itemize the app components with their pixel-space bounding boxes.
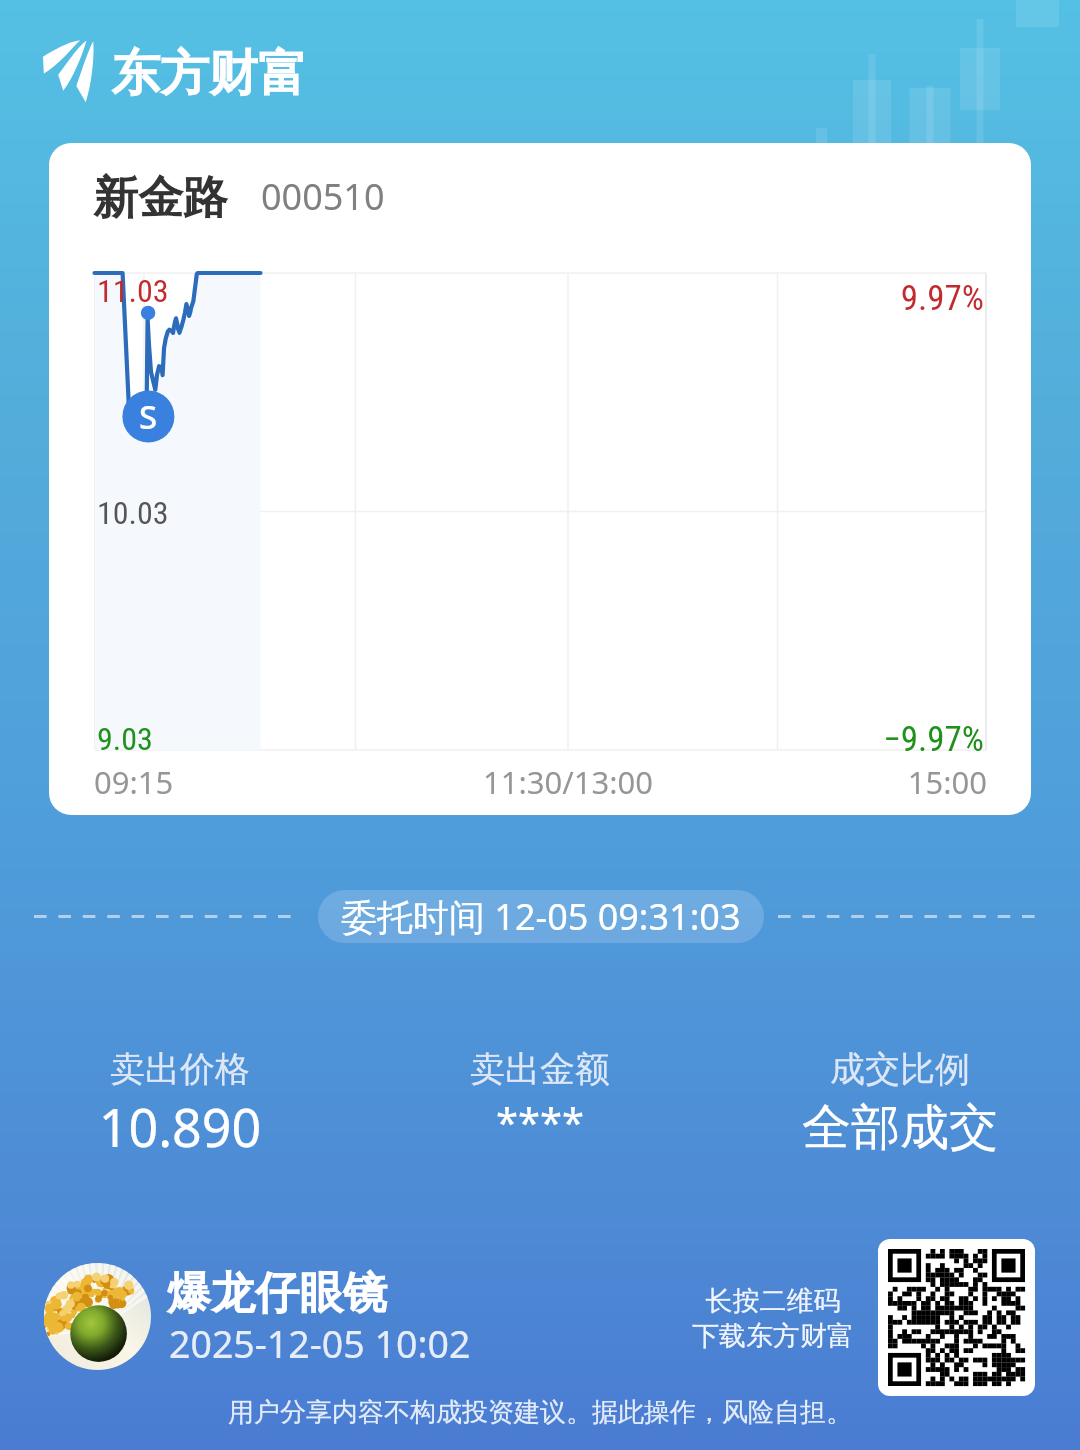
staticText: 2025-12-05 10:02: [169, 1318, 471, 1369]
staticText: 新金路: [93, 170, 228, 227]
button[interactable]: 卖出价格: [0, 1047, 360, 1163]
staticText: 10.890: [0, 1091, 360, 1162]
staticText: 东方财富: [111, 43, 307, 105]
button[interactable]: 委托时间 12-05 09:31:03: [318, 890, 764, 943]
staticText: 卖出金额: [360, 1047, 720, 1091]
staticText: 长按二维码: [683, 1284, 863, 1318]
staticText: 11.03: [97, 272, 169, 310]
button[interactable]: 长按二维码: [683, 1284, 863, 1364]
staticText: 11:30/13:00: [468, 761, 668, 803]
staticText: 下载东方财富: [683, 1319, 863, 1353]
staticText: 9.03: [97, 720, 153, 758]
staticText: −9.97%: [700, 719, 984, 760]
button[interactable]: 卖出金额: [360, 1047, 720, 1163]
button[interactable]: 扫描二维码下载东方财富: [878, 1239, 1035, 1396]
staticText: 15:00: [830, 761, 987, 803]
button[interactable]: [44, 1263, 151, 1370]
staticText: 用户分享内容不构成投资建议。据此操作，风险自担。: [0, 1396, 1080, 1429]
staticText: 卖出价格: [0, 1047, 360, 1091]
staticText: 10.03: [97, 494, 169, 532]
staticText: 成交比例: [720, 1047, 1080, 1091]
staticText: ****: [360, 1094, 720, 1148]
staticText: 委托时间 12-05 09:31:03: [341, 892, 741, 941]
staticText: 9.97%: [700, 278, 984, 319]
staticText: S: [139, 394, 158, 439]
staticText: 全部成交: [720, 1097, 1080, 1159]
button[interactable]: 成交比例: [720, 1047, 1080, 1163]
button[interactable]: [49, 143, 1031, 815]
staticText: 000510: [261, 172, 385, 221]
staticText: 09:15: [94, 761, 174, 803]
staticText: 爆龙仔眼镜: [167, 1266, 387, 1321]
